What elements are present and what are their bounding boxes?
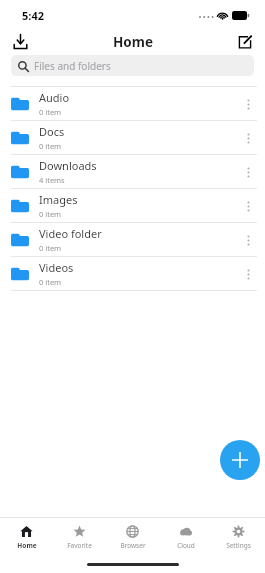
button[interactable]: Downloads — [0, 155, 265, 188]
button[interactable]: More options — [235, 227, 261, 253]
staticText: Settings — [226, 541, 251, 550]
staticText: Downloads — [39, 158, 97, 173]
button[interactable]: Home — [0, 518, 53, 556]
button[interactable]: Favorite — [53, 518, 106, 556]
button[interactable]: Video folder — [0, 223, 265, 256]
button[interactable]: Files and folders — [11, 55, 254, 76]
button[interactable]: Add — [220, 440, 260, 480]
button[interactable]: Download — [6, 28, 34, 55]
staticText: 0 item — [39, 243, 62, 253]
staticText: 0 item — [39, 107, 62, 117]
button[interactable]: Browser — [106, 518, 159, 556]
button[interactable]: Docs — [0, 121, 265, 154]
staticText: Home — [17, 541, 37, 550]
button[interactable]: More options — [235, 261, 261, 287]
staticText: Browser — [120, 541, 146, 550]
button[interactable]: More options — [235, 159, 261, 185]
staticText: Files and folders — [34, 59, 111, 73]
button[interactable]: Images — [0, 189, 265, 222]
button[interactable]: More options — [235, 193, 261, 219]
staticText: Videos — [39, 260, 74, 275]
staticText: Audio — [39, 90, 70, 105]
button[interactable]: Audio — [0, 87, 265, 120]
staticText: 0 item — [39, 277, 62, 287]
button[interactable]: More options — [235, 91, 261, 117]
staticText: Images — [39, 192, 78, 207]
button[interactable]: Settings — [212, 518, 265, 556]
staticText: 5:42 — [22, 8, 44, 23]
button[interactable]: Compose — [231, 28, 259, 55]
button[interactable]: More options — [235, 125, 261, 151]
staticText: Cloud — [177, 541, 195, 550]
staticText: Home — [113, 33, 153, 51]
button[interactable]: Cloud — [159, 518, 212, 556]
staticText: Docs — [39, 124, 65, 139]
staticText: 4 items — [39, 175, 65, 185]
staticText: 0 item — [39, 141, 62, 151]
button[interactable]: Videos — [0, 257, 265, 290]
staticText: 0 item — [39, 209, 62, 219]
staticText: Favorite — [67, 541, 92, 550]
staticText: Video folder — [39, 226, 102, 241]
